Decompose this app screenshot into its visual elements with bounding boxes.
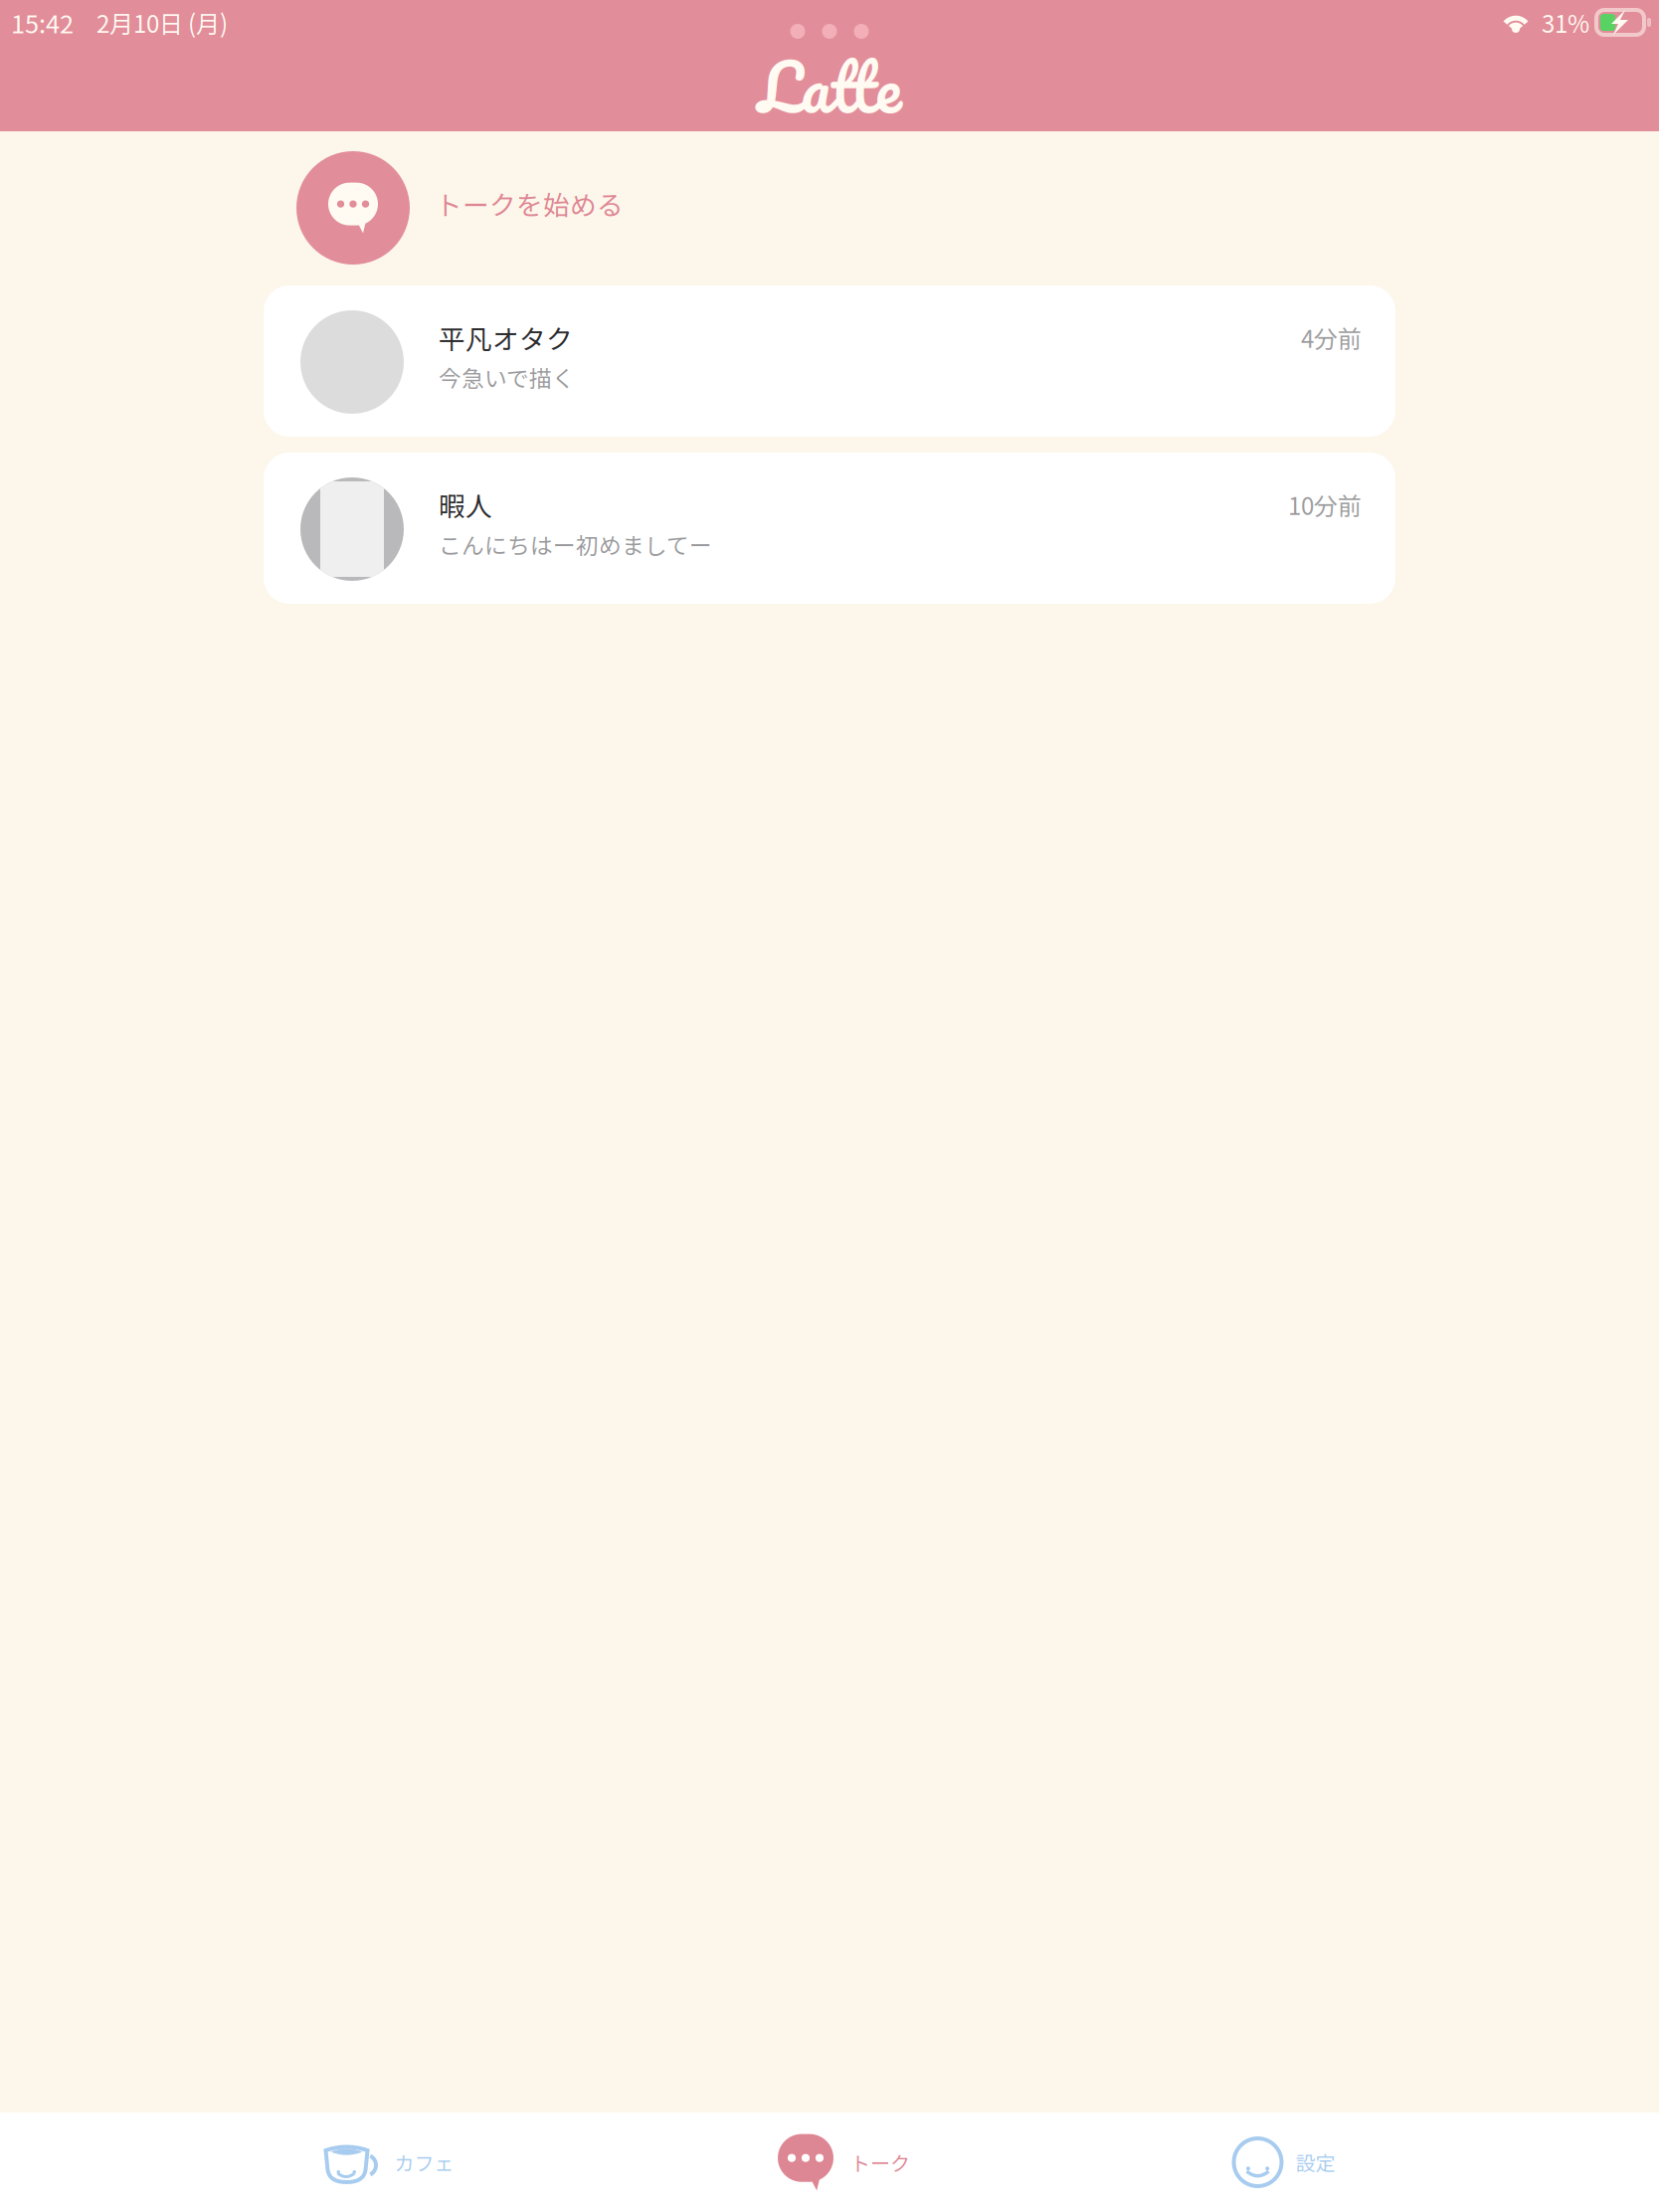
staticText: 暇人 [439,485,492,524]
staticText: カフェ [394,2148,454,2177]
staticText: 31% [1542,5,1589,40]
button[interactable]: 暇人 [264,453,1395,604]
staticText: こんにちはー初めましてー [439,528,712,560]
button[interactable]: トーク [778,2113,910,2212]
staticText: 平凡オタク [439,318,573,357]
staticText: 設定 [1295,2148,1335,2177]
button[interactable]: カフェ [324,2113,454,2212]
staticText: 2月10日 (月) [96,5,228,40]
staticText: 15:42 [11,4,74,41]
button[interactable]: 平凡オタク [264,285,1395,437]
button[interactable]: 設定 [1234,2113,1335,2212]
button[interactable]: トークを始める [264,151,1395,265]
staticText: 10分前 [1288,487,1362,522]
staticText: Latte [758,30,901,142]
staticText: トーク [850,2148,910,2177]
staticText: 今急いで描く [439,361,575,393]
staticText: トークを始める [436,184,624,223]
staticText: 4分前 [1301,320,1362,355]
